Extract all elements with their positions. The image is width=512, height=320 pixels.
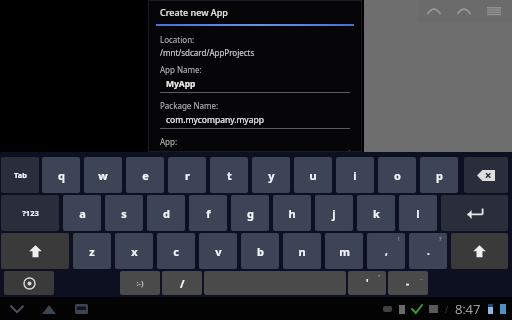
button[interactable]: n	[283, 233, 321, 269]
button[interactable]: i	[336, 157, 374, 193]
staticText: App:	[160, 136, 178, 147]
staticText: a	[79, 206, 86, 221]
staticText: :-)	[136, 278, 144, 288]
staticText: d	[163, 206, 170, 221]
button[interactable]: y	[252, 157, 290, 193]
staticText: h	[288, 206, 296, 221]
button[interactable]	[1, 233, 69, 269]
staticText: Location:	[160, 34, 195, 45]
staticText: -	[406, 276, 410, 290]
button[interactable]	[451, 233, 508, 269]
button[interactable]: r	[168, 157, 206, 193]
staticText: ?123	[22, 208, 39, 218]
button[interactable]	[464, 157, 508, 193]
button[interactable]: '	[348, 271, 386, 295]
button[interactable]: h	[273, 195, 311, 231]
button[interactable]: ?123	[1, 195, 59, 231]
button[interactable]: q	[42, 157, 80, 193]
staticText: App Name:	[160, 64, 202, 75]
button[interactable]: Tab	[1, 157, 39, 193]
staticText: o	[394, 168, 401, 183]
staticText: ,	[385, 244, 388, 258]
staticText: _	[420, 273, 423, 281]
button[interactable]: Hide keyboard	[8, 300, 26, 318]
staticText: i	[353, 168, 357, 183]
staticText: p	[436, 168, 443, 183]
button[interactable]: v	[199, 233, 237, 269]
staticText: n	[298, 244, 306, 259]
staticText: t	[227, 168, 232, 183]
staticText: .	[427, 244, 430, 258]
button[interactable]: -	[388, 271, 428, 295]
staticText: !	[398, 235, 400, 243]
button[interactable]: t	[210, 157, 248, 193]
staticText: ?	[439, 235, 442, 243]
staticText: z	[89, 244, 95, 259]
staticText: MyApp	[166, 78, 196, 90]
staticText: /mnt/sdcard/AppProjects	[160, 47, 255, 58]
button[interactable]: w	[84, 157, 122, 193]
button[interactable]: x	[115, 233, 153, 269]
staticText: /	[445, 304, 448, 315]
staticText: "	[378, 273, 381, 281]
button[interactable]: Redo	[456, 3, 472, 19]
staticText: v	[215, 244, 222, 259]
staticText: 8:47	[455, 300, 481, 318]
staticText: '	[366, 276, 369, 290]
button[interactable]: Undo	[426, 3, 442, 19]
staticText: u	[309, 168, 317, 183]
button[interactable]: Home	[40, 300, 58, 318]
button[interactable]: :-)	[120, 271, 160, 295]
button[interactable]: b	[241, 233, 279, 269]
button[interactable]: s	[105, 195, 143, 231]
button[interactable]: p	[420, 157, 458, 193]
button[interactable]: c	[157, 233, 195, 269]
button[interactable]: z	[73, 233, 111, 269]
staticText: q	[58, 168, 65, 183]
button[interactable]: g	[231, 195, 269, 231]
staticText: k	[373, 206, 380, 221]
button[interactable]: d	[147, 195, 185, 231]
staticText: b	[257, 244, 264, 259]
staticText: x	[131, 244, 138, 259]
button[interactable]: a	[63, 195, 101, 231]
staticText: /	[180, 276, 185, 291]
staticText: r	[185, 168, 190, 183]
button[interactable]: k	[357, 195, 395, 231]
staticText: g	[247, 206, 254, 221]
button[interactable]: u	[294, 157, 332, 193]
button[interactable]: m	[325, 233, 363, 269]
button[interactable]: /	[162, 271, 202, 295]
button[interactable]: o	[378, 157, 416, 193]
button[interactable]: Hello World	[160, 150, 350, 152]
staticText: w	[98, 168, 108, 183]
staticText: y	[268, 168, 275, 183]
button[interactable]: com.mycompany.myapp	[160, 114, 350, 129]
staticText: m	[339, 244, 350, 259]
button[interactable]: Menu	[486, 3, 502, 19]
staticText: Hello World	[166, 150, 343, 152]
staticText: s	[121, 206, 127, 221]
button[interactable]: .	[409, 233, 447, 269]
button[interactable]: l	[399, 195, 437, 231]
staticText: e	[142, 168, 149, 183]
button[interactable]: j	[315, 195, 353, 231]
button[interactable]	[4, 271, 54, 295]
button[interactable]: ,	[367, 233, 405, 269]
button[interactable]: e	[126, 157, 164, 193]
staticText: c	[173, 244, 179, 259]
staticText: com.mycompany.myapp	[166, 114, 264, 126]
staticText: Tab	[14, 170, 27, 180]
button[interactable]: Recent apps	[72, 300, 90, 318]
staticText: Package Name:	[160, 100, 219, 111]
staticText: j	[332, 206, 336, 221]
staticText: Create new App	[160, 6, 228, 18]
button[interactable]	[441, 195, 508, 231]
staticText: f	[206, 206, 211, 221]
staticText: l	[416, 206, 420, 221]
button[interactable]: MyApp	[160, 78, 350, 93]
button[interactable]: f	[189, 195, 227, 231]
